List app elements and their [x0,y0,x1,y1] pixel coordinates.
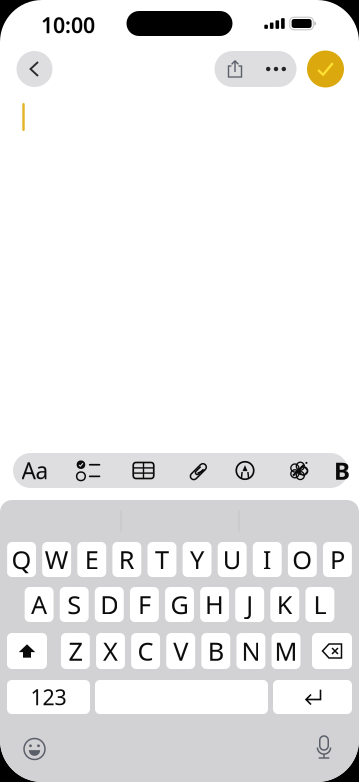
button[interactable]: E [77,542,106,577]
button[interactable]: R [112,542,141,577]
staticText: W [45,543,69,576]
button[interactable]: More options [255,51,296,87]
staticText: Q [11,543,31,576]
button[interactable]: L [305,587,334,622]
staticText: E [85,543,99,576]
staticText: H [205,588,224,621]
button[interactable]: Dictation [304,727,344,767]
button[interactable]: Checklist [66,453,110,488]
button[interactable]: M [271,633,300,669]
staticText: C [138,634,154,668]
button[interactable]: Markup [223,453,267,488]
button[interactable]: Done [307,50,344,87]
staticText: I [263,543,272,576]
button[interactable]: Attach file [176,453,220,488]
button[interactable]: U [218,542,247,577]
button[interactable]: P [323,542,352,577]
staticText: U [223,543,242,576]
button[interactable]: N [236,633,265,669]
button[interactable]: Bold [335,453,349,488]
staticText: P [330,543,345,576]
button[interactable]: Delete [312,633,352,669]
button[interactable]: F [130,587,159,622]
staticText: B [334,455,350,486]
staticText: F [138,588,151,621]
staticText: K [277,588,293,621]
button[interactable]: Z [61,633,90,669]
staticText: R [119,543,135,576]
button[interactable]: H [200,587,229,622]
button[interactable]: 123 [7,680,90,714]
button[interactable]: V [166,633,195,669]
button[interactable]: Shift [7,633,47,669]
staticText: N [241,634,260,668]
staticText: Y [190,543,204,576]
staticText: Aa [21,455,48,485]
button[interactable]: A [25,587,53,622]
button[interactable]: Emoji [14,729,54,769]
staticText: X [103,634,118,668]
button[interactable]: Handwriting [277,453,321,488]
staticText: D [100,588,118,621]
staticText: 123 [30,683,66,711]
button[interactable]: B [201,633,230,669]
button[interactable]: Format [13,453,57,488]
button[interactable]: Q [7,542,36,577]
staticText: J [246,588,253,621]
staticText: O [292,543,312,576]
button[interactable]: T [147,542,176,577]
button[interactable]: C [131,633,160,669]
staticText: B [208,634,224,668]
button[interactable]: J [235,587,264,622]
button[interactable]: O [288,542,317,577]
staticText: T [155,543,169,576]
button[interactable]: D [95,587,124,622]
staticText: V [173,634,188,668]
button[interactable]: G [165,587,194,622]
staticText: G [170,588,188,621]
button[interactable]: S [60,587,89,622]
button[interactable]: W [42,542,71,577]
staticText: M [274,634,297,668]
button[interactable]: Return [273,680,352,714]
staticText: L [313,588,326,621]
staticText: 10:00 [41,11,95,39]
staticText: S [67,588,81,621]
staticText: A [31,588,47,621]
button[interactable]: Y [183,542,211,577]
button[interactable]: K [270,587,299,622]
staticText: Z [68,634,82,668]
button[interactable]: Table [121,453,165,488]
button[interactable]: I [253,542,282,577]
button[interactable]: X [96,633,125,669]
button[interactable]: Back [16,51,52,87]
button[interactable]: Share [214,51,255,87]
